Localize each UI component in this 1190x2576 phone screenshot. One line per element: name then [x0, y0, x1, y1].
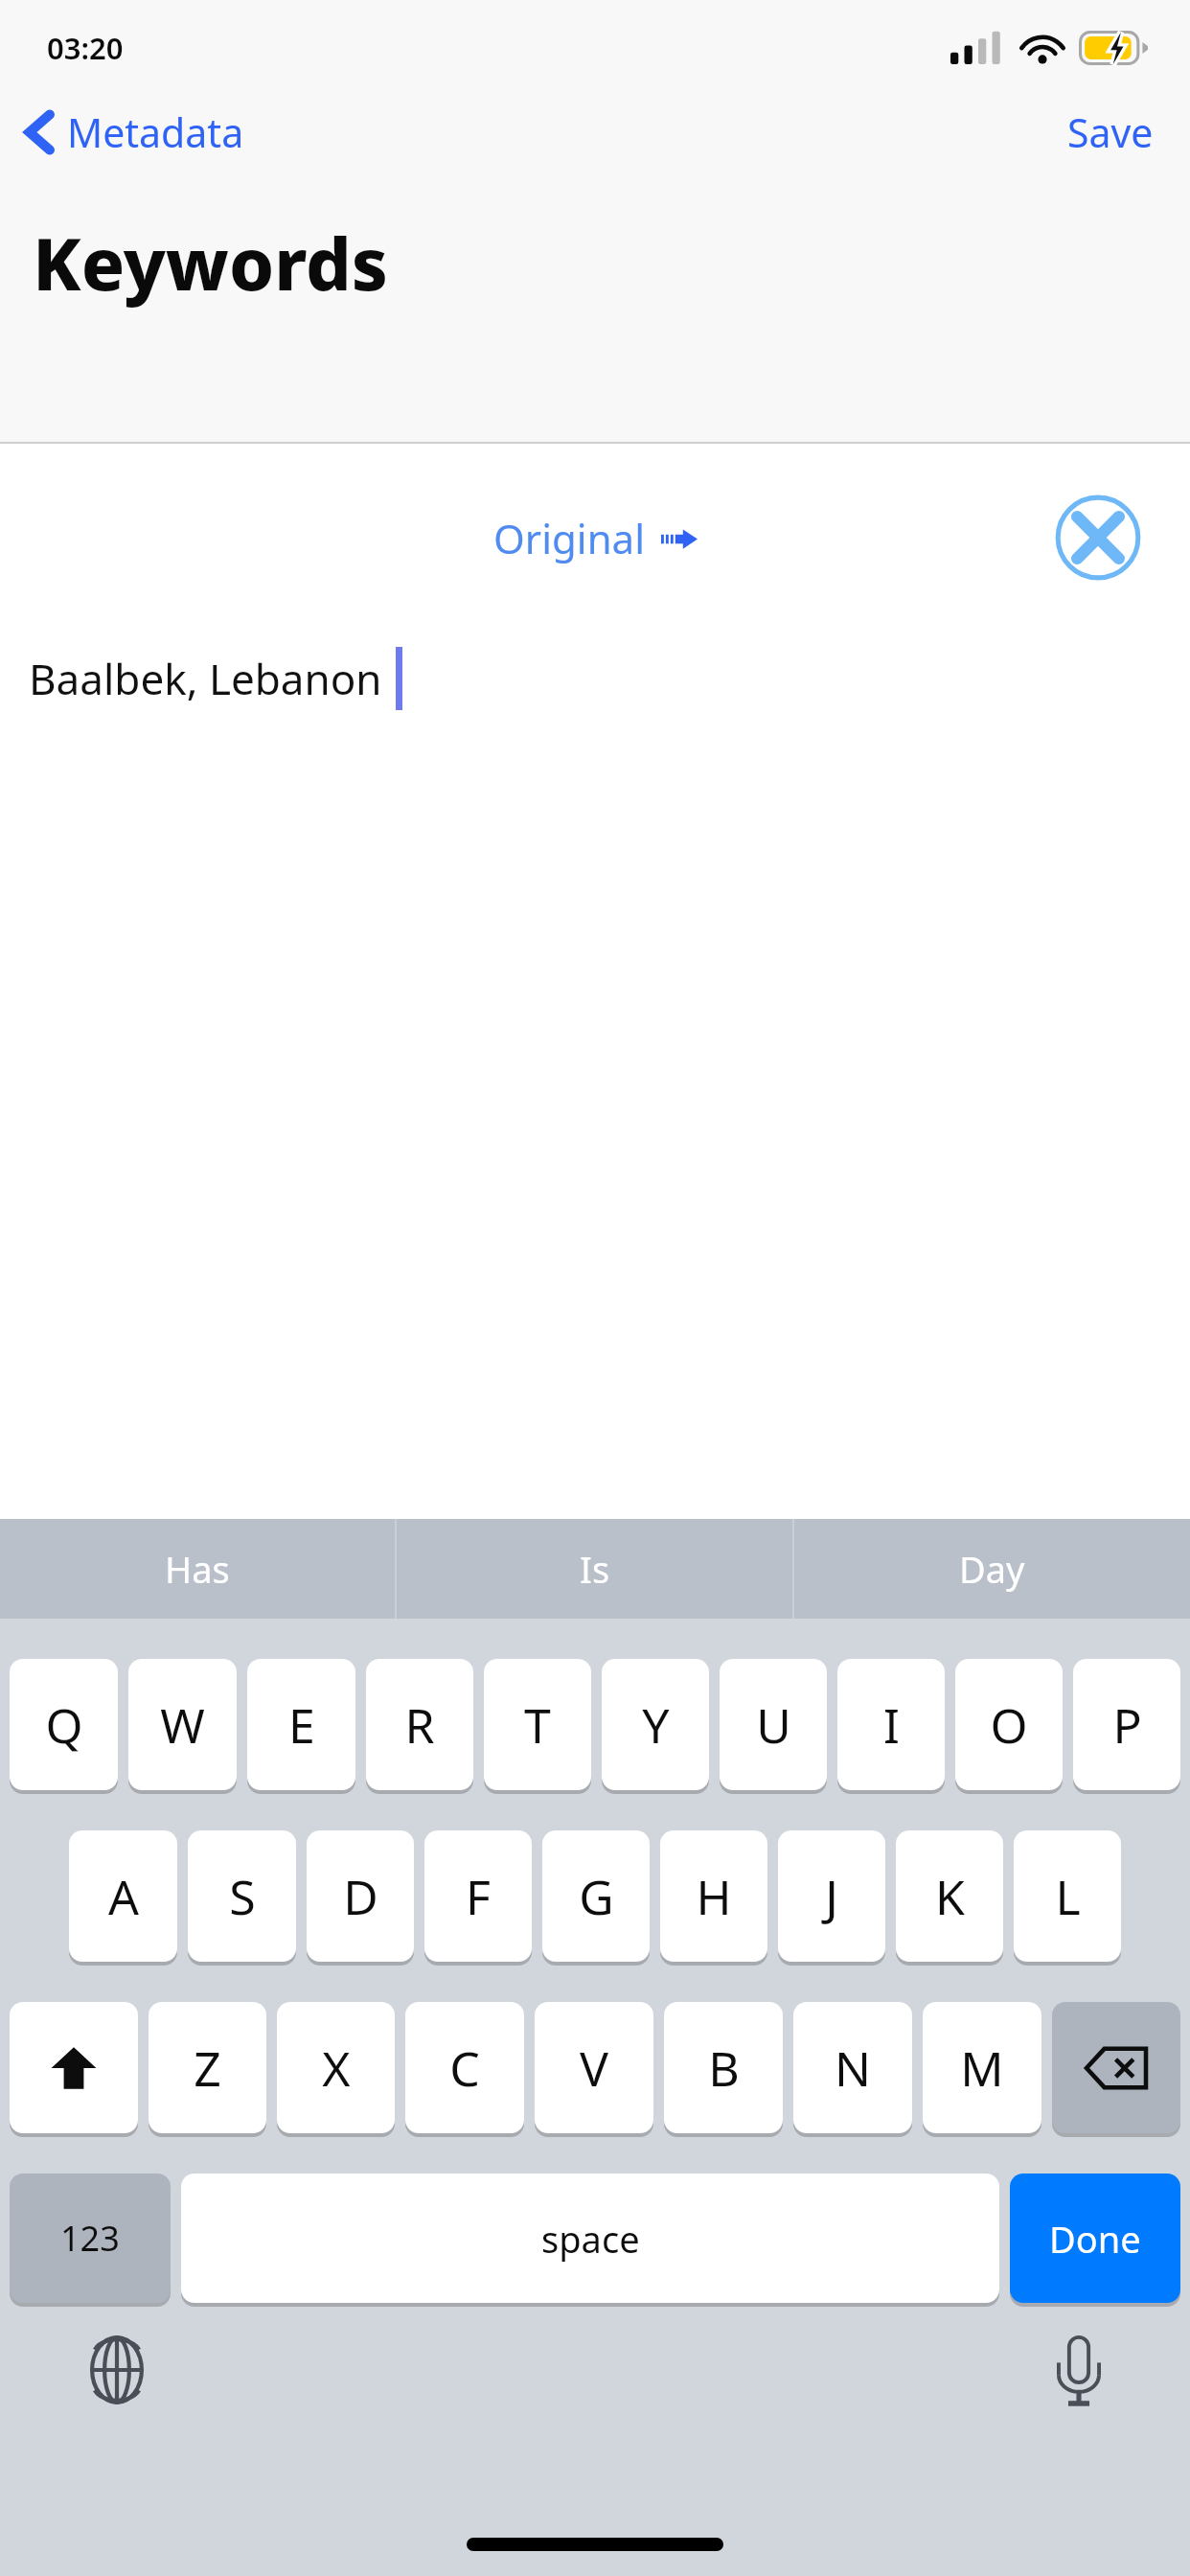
- button[interactable]: space: [181, 2173, 999, 2303]
- staticText: Baalbek, Lebanon: [29, 650, 382, 707]
- button[interactable]: Dictation: [1037, 2328, 1121, 2412]
- button[interactable]: Y: [602, 1659, 709, 1790]
- staticText: F: [466, 1864, 491, 1929]
- staticText: J: [825, 1864, 838, 1929]
- staticText: A: [108, 1864, 139, 1929]
- staticText: C: [449, 2035, 480, 2101]
- button[interactable]: Save: [1044, 96, 1190, 169]
- staticText: S: [229, 1864, 256, 1929]
- staticText: B: [708, 2035, 740, 2101]
- staticText: Y: [642, 1692, 670, 1758]
- button[interactable]: U: [720, 1659, 827, 1790]
- button[interactable]: B: [664, 2002, 783, 2133]
- staticText: G: [579, 1864, 614, 1929]
- button[interactable]: Metadata: [0, 98, 260, 167]
- button[interactable]: F: [424, 1830, 532, 1962]
- button[interactable]: [1052, 2002, 1180, 2133]
- staticText: space: [541, 2214, 640, 2264]
- other: Shift: [10, 2002, 138, 2133]
- button[interactable]: G: [542, 1830, 650, 1962]
- button[interactable]: K: [896, 1830, 1003, 1962]
- staticText: Original: [493, 511, 646, 565]
- staticText: O: [990, 1692, 1028, 1758]
- staticText: T: [524, 1692, 551, 1758]
- staticText: X: [322, 2035, 351, 2101]
- button[interactable]: P: [1073, 1659, 1180, 1790]
- button[interactable]: O: [955, 1659, 1063, 1790]
- staticText: Done: [1049, 2214, 1141, 2264]
- button[interactable]: R: [366, 1659, 473, 1790]
- staticText: R: [404, 1692, 435, 1758]
- button[interactable]: V: [535, 2002, 653, 2133]
- button[interactable]: T: [484, 1659, 591, 1790]
- staticText: Save: [1067, 105, 1154, 159]
- staticText: 03:20: [47, 28, 124, 68]
- button[interactable]: Has: [0, 1519, 395, 1619]
- staticText: W: [160, 1692, 205, 1758]
- button[interactable]: Is: [397, 1519, 792, 1619]
- button[interactable]: M: [923, 2002, 1041, 2133]
- staticText: Z: [194, 2035, 221, 2101]
- staticText: Keywords: [33, 214, 388, 311]
- button[interactable]: C: [405, 2002, 524, 2133]
- button[interactable]: D: [307, 1830, 414, 1962]
- staticText: D: [343, 1864, 378, 1929]
- staticText: Metadata: [67, 105, 244, 159]
- staticText: Day: [959, 1544, 1025, 1594]
- button[interactable]: X: [277, 2002, 395, 2133]
- staticText: 123: [60, 2215, 120, 2262]
- staticText: L: [1055, 1864, 1081, 1929]
- staticText: U: [756, 1692, 791, 1758]
- button[interactable]: Day: [794, 1519, 1190, 1619]
- staticText: Has: [165, 1544, 230, 1594]
- button[interactable]: A: [69, 1830, 177, 1962]
- button[interactable]: J: [778, 1830, 885, 1962]
- staticText: V: [580, 2035, 608, 2101]
- button[interactable]: Done: [1010, 2173, 1180, 2303]
- staticText: E: [288, 1692, 315, 1758]
- button[interactable]: Change keyboard language: [75, 2328, 159, 2412]
- button[interactable]: L: [1014, 1830, 1121, 1962]
- staticText: Q: [45, 1692, 83, 1758]
- staticText: N: [835, 2035, 871, 2101]
- button[interactable]: H: [660, 1830, 767, 1962]
- button[interactable]: W: [128, 1659, 237, 1790]
- button[interactable]: Original: [480, 503, 711, 573]
- button[interactable]: Z: [149, 2002, 266, 2133]
- button[interactable]: Q: [10, 1659, 118, 1790]
- staticText: I: [883, 1692, 900, 1758]
- staticText: P: [1112, 1692, 1142, 1758]
- button[interactable]: S: [188, 1830, 296, 1962]
- button[interactable]: I: [837, 1659, 945, 1790]
- button[interactable]: N: [793, 2002, 912, 2133]
- staticText: H: [696, 1864, 732, 1929]
- staticText: Is: [580, 1544, 610, 1594]
- button[interactable]: 123: [10, 2173, 171, 2303]
- staticText: M: [960, 2035, 1004, 2101]
- button[interactable]: E: [247, 1659, 355, 1790]
- staticText: K: [935, 1864, 965, 1929]
- button[interactable]: Clear: [1054, 494, 1142, 582]
- button[interactable]: [10, 2002, 138, 2133]
- other: Backspace: [1052, 2002, 1180, 2133]
